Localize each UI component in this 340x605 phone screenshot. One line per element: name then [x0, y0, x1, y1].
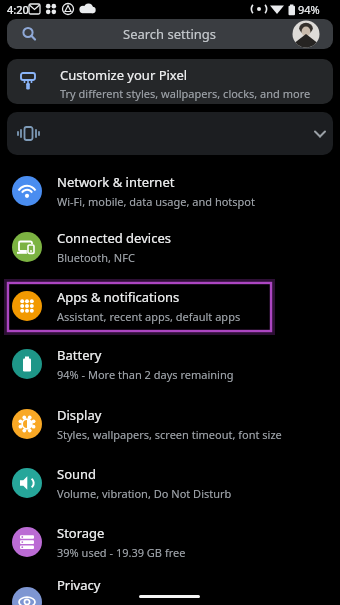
staticText: Bluetooth, NFC: [57, 250, 135, 265]
button[interactable]: [7, 112, 333, 155]
button[interactable]: Battery: [0, 334, 340, 393]
button[interactable]: Display: [0, 394, 340, 453]
staticText: Search settings: [123, 25, 217, 43]
staticText: Wi-Fi, mobile, data usage, and hotspot: [57, 194, 255, 209]
staticText: Styles, wallpapers, screen timeout, font…: [57, 427, 282, 442]
staticText: Try different styles, wallpapers, clocks…: [60, 86, 311, 101]
staticText: Battery: [57, 346, 102, 364]
staticText: 4:20: [7, 2, 29, 17]
button[interactable]: Search settings: [7, 19, 333, 49]
button[interactable]: Apps & notifications: [0, 276, 340, 335]
button[interactable]: Sound: [0, 453, 340, 512]
button[interactable]: Connected devices: [0, 217, 340, 276]
staticText: Display: [57, 406, 102, 424]
button[interactable]: Storage: [0, 512, 340, 571]
button[interactable]: Privacy: [0, 555, 340, 605]
staticText: 39% used - 19.39 GB free: [57, 545, 186, 560]
staticText: Assistant, recent apps, default apps: [57, 309, 241, 324]
staticText: Volume, vibration, Do Not Disturb: [57, 486, 232, 501]
button[interactable]: Customize your Pixel: [7, 59, 333, 104]
staticText: Apps & notifications: [57, 288, 180, 306]
staticText: 94%: [298, 2, 320, 17]
button[interactable]: Network & internet: [0, 161, 340, 220]
staticText: Customize your Pixel: [60, 66, 188, 84]
staticText: Storage: [57, 524, 105, 542]
staticText: Network & internet: [57, 173, 175, 191]
staticText: Sound: [57, 465, 97, 483]
staticText: Privacy: [57, 576, 101, 594]
staticText: 94% - More than 2 days remaining: [57, 367, 234, 382]
staticText: Connected devices: [57, 229, 171, 247]
